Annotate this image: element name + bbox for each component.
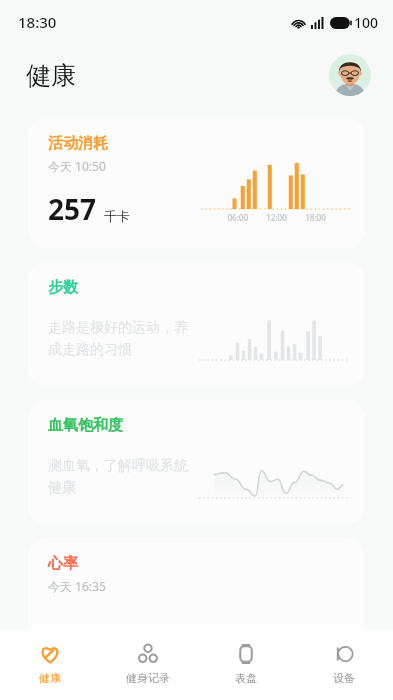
- staticText: 06:00: [219, 212, 257, 223]
- button[interactable]: 血氧饱和度: [28, 400, 365, 524]
- staticText: 18:30: [18, 12, 57, 32]
- button[interactable]: 设备: [295, 630, 393, 700]
- staticText: 今天 16:35: [48, 578, 106, 594]
- staticText: 表盘: [235, 671, 257, 685]
- button[interactable]: 表盘: [197, 630, 295, 700]
- button[interactable]: 活动消耗: [28, 118, 365, 248]
- staticText: 活动消耗: [48, 134, 108, 153]
- staticText: 千卡: [104, 208, 130, 224]
- button[interactable]: 步数: [28, 262, 365, 386]
- button[interactable]: 心率: [28, 538, 365, 662]
- staticText: 步数: [48, 278, 78, 297]
- button[interactable]: 健身记录: [99, 630, 197, 700]
- staticText: 100: [354, 13, 379, 32]
- staticText: 走路是极好的运动，养 成走路的习惯: [48, 319, 188, 358]
- staticText: 健康: [26, 60, 76, 91]
- staticText: 257: [48, 190, 97, 228]
- staticText: 12:00: [257, 212, 296, 223]
- staticText: 设备: [333, 671, 355, 685]
- button[interactable]: 健康: [0, 630, 99, 700]
- staticText: 血氧饱和度: [48, 416, 123, 435]
- staticText: 今天 10:50: [48, 158, 106, 174]
- staticText: 心率: [48, 554, 78, 573]
- staticText: 18:00: [296, 212, 335, 223]
- staticText: 健康: [39, 671, 61, 685]
- staticText: 健身记录: [126, 671, 170, 685]
- staticText: 测血氧，了解呼吸系统 健康: [48, 457, 188, 496]
- button[interactable]: Profile: [329, 54, 371, 96]
